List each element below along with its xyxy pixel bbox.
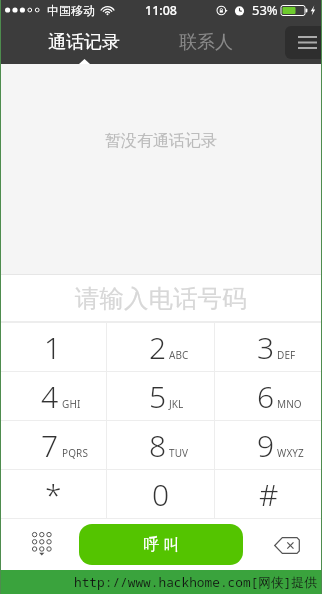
staticText: TUV [169,446,189,460]
staticText: WXYZ [277,446,304,460]
staticText: 9 [257,425,275,466]
staticText: 暂没有通话记录 [105,131,217,151]
button[interactable]: 1 [0,323,106,371]
staticText: 11:08 [145,2,178,19]
staticText: DEF [277,348,296,362]
staticText: 呼叫 [141,535,182,555]
staticText: PQRS [62,446,88,460]
button[interactable]: 7 [0,421,106,469]
button[interactable]: Hide keypad [20,524,62,566]
button[interactable]: 联系人 [167,20,244,64]
staticText: 53% [252,1,278,19]
staticText: 3 [257,327,275,368]
button[interactable]: # [215,470,322,518]
staticText: 0 [152,474,170,515]
staticText: * [45,474,62,515]
button[interactable]: 通话记录 [0,20,167,64]
staticText: 7 [41,425,59,466]
button[interactable]: Menu [285,26,322,59]
staticText: 通话记录 [48,31,120,54]
staticText: http://www.hackhome.com[网侠]提供 [74,573,318,590]
staticText: # [259,474,279,515]
staticText: 1 [44,327,62,368]
button[interactable]: Backspace [266,524,308,566]
staticText: 5 [149,376,167,417]
button[interactable]: 8 [107,421,214,469]
button[interactable]: 4 [0,372,106,420]
staticText: GHI [62,397,81,411]
staticText: 8 [149,425,167,466]
staticText: 请输入电话号码 [75,283,247,314]
button[interactable]: 0 [107,470,214,518]
button[interactable]: * [0,470,106,518]
staticText: 中国移动 [47,3,95,18]
button[interactable]: 2 [107,323,214,371]
button[interactable]: 9 [215,421,322,469]
staticText: 4 [41,376,59,417]
staticText: MNO [277,397,302,411]
button[interactable]: 呼叫 [79,524,243,565]
staticText: 2 [149,327,167,368]
staticText: ABC [169,348,189,362]
button[interactable]: 6 [215,372,322,420]
button[interactable]: 3 [215,323,322,371]
staticText: JKL [169,397,184,411]
staticText: 6 [257,376,275,417]
button[interactable]: 5 [107,372,214,420]
staticText: 联系人 [179,31,233,54]
